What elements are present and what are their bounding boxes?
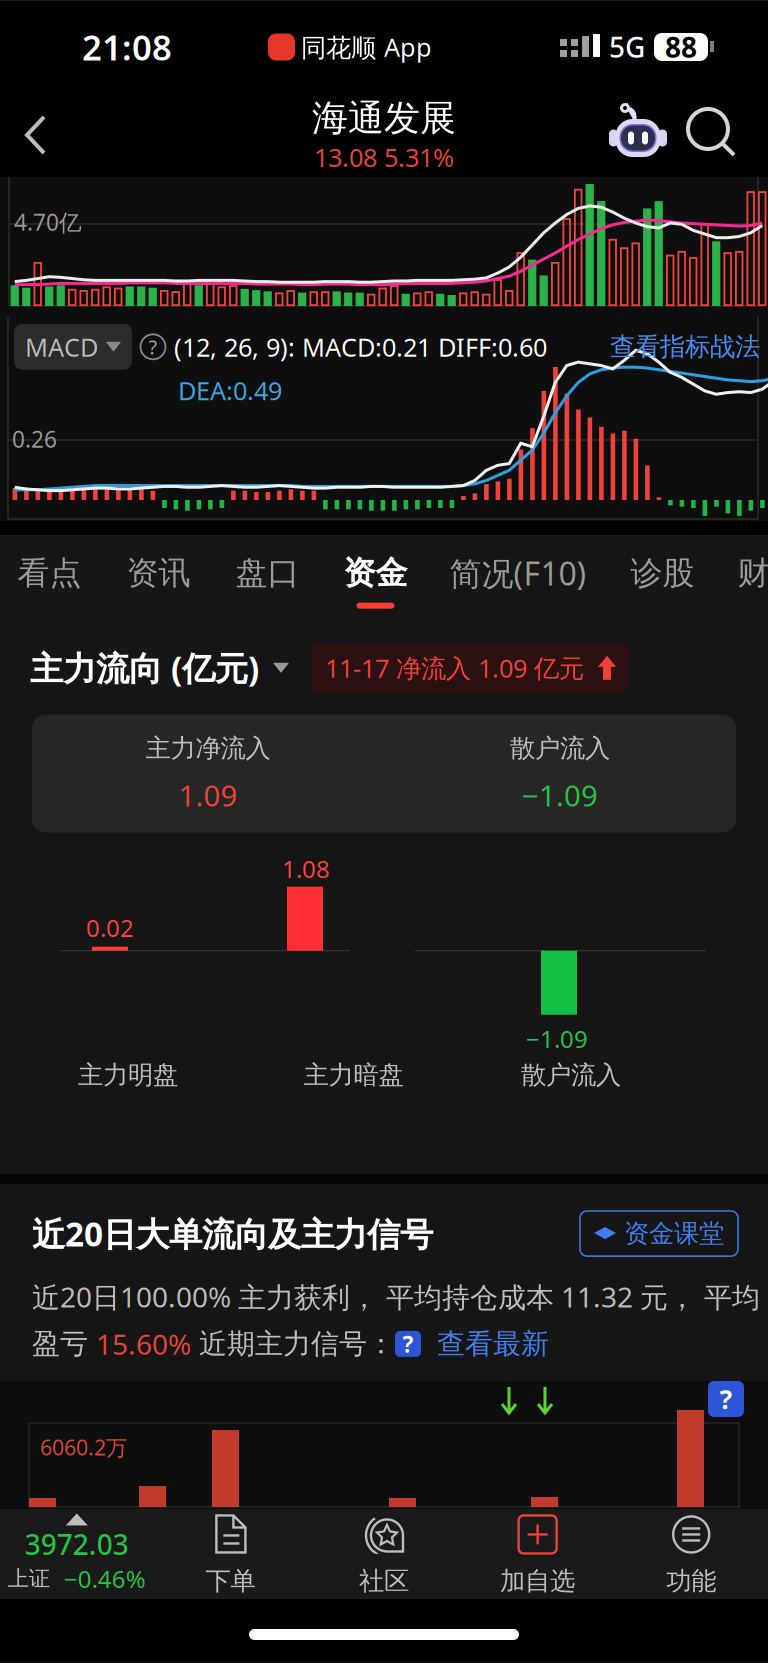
staticText: 0.02 <box>86 912 134 944</box>
staticText: 查看最新 <box>421 1327 549 1361</box>
button[interactable]: 看点 <box>17 535 81 627</box>
staticText: 4.70亿 <box>14 207 82 237</box>
button[interactable]: 诊股 <box>630 535 694 627</box>
staticText: (12, 26, 9): MACD:0.21 DIFF:0.60 <box>174 330 547 364</box>
staticText: MACD <box>25 330 98 364</box>
button[interactable]: 3972.03 <box>0 1513 154 1595</box>
staticText: 简况(F10) <box>449 552 586 594</box>
staticText: 21:08 <box>82 24 172 70</box>
staticText: 社区 <box>359 1565 409 1596</box>
staticText: −1.09 <box>526 1023 588 1055</box>
staticText: 15.60% <box>96 1325 191 1362</box>
button[interactable]: Back <box>0 95 82 175</box>
staticText: DEA:0.49 <box>178 374 282 407</box>
staticText: ? <box>719 1381 732 1417</box>
staticText: 加自选 <box>500 1565 575 1596</box>
button[interactable]: 资金 <box>343 535 407 627</box>
button[interactable]: 下单 <box>154 1511 307 1596</box>
staticText: 0.26 <box>12 424 57 454</box>
button[interactable]: AI assistant <box>598 97 678 173</box>
button[interactable]: 资讯 <box>126 535 190 627</box>
staticText: 功能 <box>666 1565 716 1596</box>
staticText: 看点 <box>17 553 81 593</box>
staticText: 主力明盘 <box>78 1060 178 1091</box>
staticText: 盈亏 <box>32 1327 96 1361</box>
button[interactable]: MACD <box>14 324 132 370</box>
staticText: 财 <box>737 553 768 593</box>
staticText: 13.08 5.31% <box>314 140 454 174</box>
staticText: 上证 <box>8 1565 50 1592</box>
staticText: 近20日100.00% 主力获利， 平均持仓成本 11.32 元， 平均 <box>32 1278 760 1315</box>
button[interactable]: 社区 <box>307 1511 461 1596</box>
button[interactable]: 加自选 <box>461 1511 614 1596</box>
staticText: 近20日大单流向及主力信号 <box>32 1211 433 1256</box>
staticText: 88 <box>665 28 697 66</box>
staticText: ? <box>402 1329 413 1359</box>
button[interactable]: 简况(F10) <box>449 535 586 627</box>
staticText: 资金课堂 <box>624 1218 724 1249</box>
staticText: 散户流入 <box>510 733 610 764</box>
staticText: 11-17 净流入 1.09 亿元 <box>325 651 584 685</box>
staticText: 资讯 <box>126 553 190 593</box>
staticText: 海通发展 <box>312 96 456 140</box>
staticText: 5G <box>609 28 645 66</box>
staticText: 资金 <box>343 553 407 593</box>
staticText: −1.09 <box>522 776 598 815</box>
button[interactable]: Indicator help <box>132 327 174 367</box>
staticText: 散户流入 <box>521 1060 621 1091</box>
staticText: 查看指标战法 <box>610 331 760 362</box>
staticText: ? <box>148 333 157 360</box>
staticText: 主力暗盘 <box>303 1060 403 1091</box>
button[interactable]: Search <box>678 95 768 175</box>
staticText: 1.09 <box>178 776 237 815</box>
button[interactable]: 盘口 <box>235 535 299 627</box>
button[interactable]: 财 <box>734 535 768 627</box>
staticText: 6060.2万 <box>40 1433 127 1461</box>
button[interactable]: 查看指标战法 <box>610 331 768 362</box>
staticText: 下单 <box>205 1565 255 1596</box>
button[interactable]: 功能 <box>614 1511 768 1596</box>
staticText: −0.46% <box>64 1563 146 1595</box>
staticText: 3972.03 <box>25 1525 129 1563</box>
staticText: 主力净流入 <box>145 733 270 764</box>
staticText: 主力流向 (亿元) <box>30 646 259 690</box>
staticText: 近期主力信号： <box>191 1327 395 1361</box>
staticText: 盘口 <box>235 553 299 593</box>
staticText: 诊股 <box>630 553 694 593</box>
staticText: 1.08 <box>282 853 330 885</box>
staticText: 同花顺 App <box>301 30 432 64</box>
button[interactable]: 资金课堂 <box>580 1211 738 1256</box>
